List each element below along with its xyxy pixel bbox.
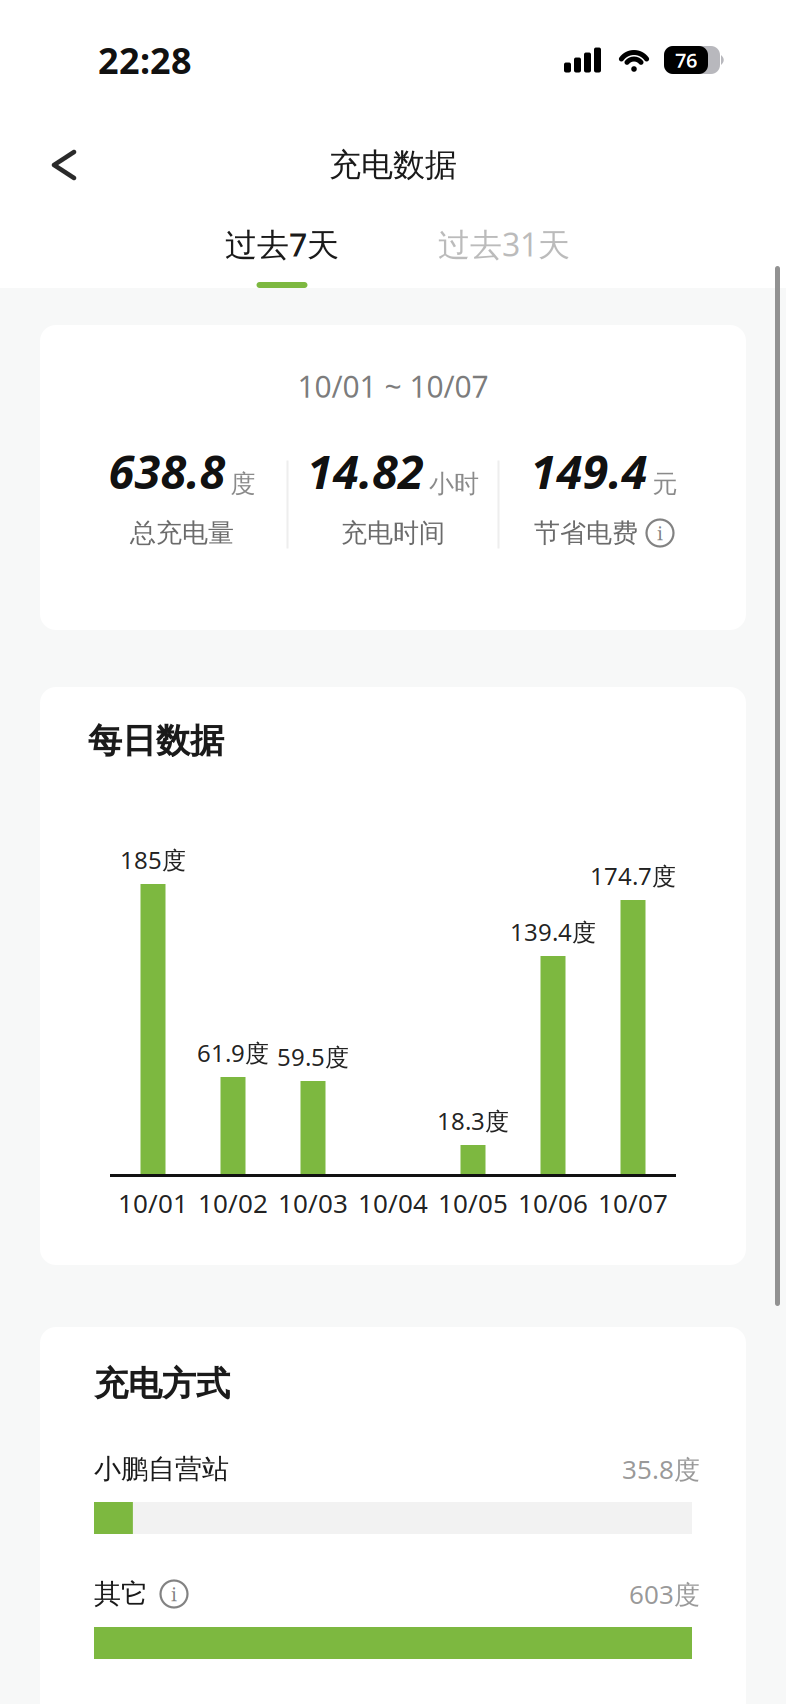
staticText: 度 [230, 468, 255, 500]
staticText: 174.7度 [590, 859, 676, 892]
staticText: 35.8度 [622, 1451, 700, 1487]
staticText: 18.3度 [437, 1104, 509, 1137]
staticText: 10/01 [118, 1185, 188, 1221]
staticText: 14.82 [307, 439, 424, 503]
staticText: 603度 [629, 1576, 700, 1612]
staticText: 61.9度 [197, 1036, 269, 1069]
staticText: 其它 [94, 1577, 148, 1611]
button[interactable]: Back [0, 130, 76, 200]
staticText: 10/07 [598, 1185, 668, 1221]
staticText: i [171, 1581, 177, 1607]
staticText: 10/04 [358, 1185, 428, 1221]
staticText: 76 [675, 46, 697, 74]
staticText: 过去7天 [225, 222, 339, 266]
button[interactable]: 过去7天 [171, 225, 393, 288]
staticText: 节省电费 [534, 517, 638, 549]
staticText: 充电数据 [329, 145, 457, 185]
staticText: 充电时间 [341, 517, 445, 549]
staticText: i [657, 520, 663, 546]
staticText: 10/05 [438, 1185, 508, 1221]
staticText: 总充电量 [130, 517, 234, 549]
button[interactable]: Info [160, 1580, 188, 1608]
staticText: 每日数据 [88, 720, 224, 762]
staticText: 10/02 [198, 1185, 268, 1221]
staticText: 139.4度 [510, 915, 596, 948]
staticText: 小鹏自营站 [94, 1452, 229, 1486]
staticText: 149.4 [530, 439, 647, 503]
button[interactable]: 过去31天 [393, 225, 615, 288]
staticText: 22:28 [98, 35, 192, 84]
staticText: 元 [652, 468, 677, 500]
staticText: 充电方式 [94, 1363, 230, 1405]
staticText: 185度 [120, 843, 186, 876]
staticText: 59.5度 [277, 1040, 349, 1073]
staticText: 10/03 [278, 1185, 348, 1221]
staticText: 638.8 [108, 439, 225, 503]
staticText: 过去31天 [438, 222, 570, 266]
staticText: 10/01 ~ 10/07 [297, 366, 488, 406]
staticText: 小时 [429, 468, 479, 500]
button[interactable]: Info [646, 519, 674, 547]
staticText: 10/06 [518, 1185, 588, 1221]
